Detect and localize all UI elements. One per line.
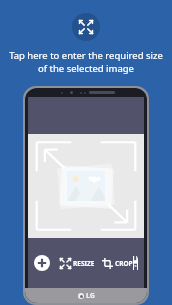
button[interactable]: CROP xyxy=(102,258,133,269)
staticText: RESIZE xyxy=(73,259,95,268)
button[interactable]: Resize xyxy=(72,13,100,41)
button[interactable]: Add xyxy=(34,255,50,271)
staticText: Tap here to enter the required size of t… xyxy=(0,49,172,75)
button[interactable]: Save xyxy=(133,256,138,270)
staticText: LG xyxy=(86,291,95,301)
button[interactable]: RESIZE xyxy=(60,258,95,269)
staticText: CROP xyxy=(115,259,133,268)
